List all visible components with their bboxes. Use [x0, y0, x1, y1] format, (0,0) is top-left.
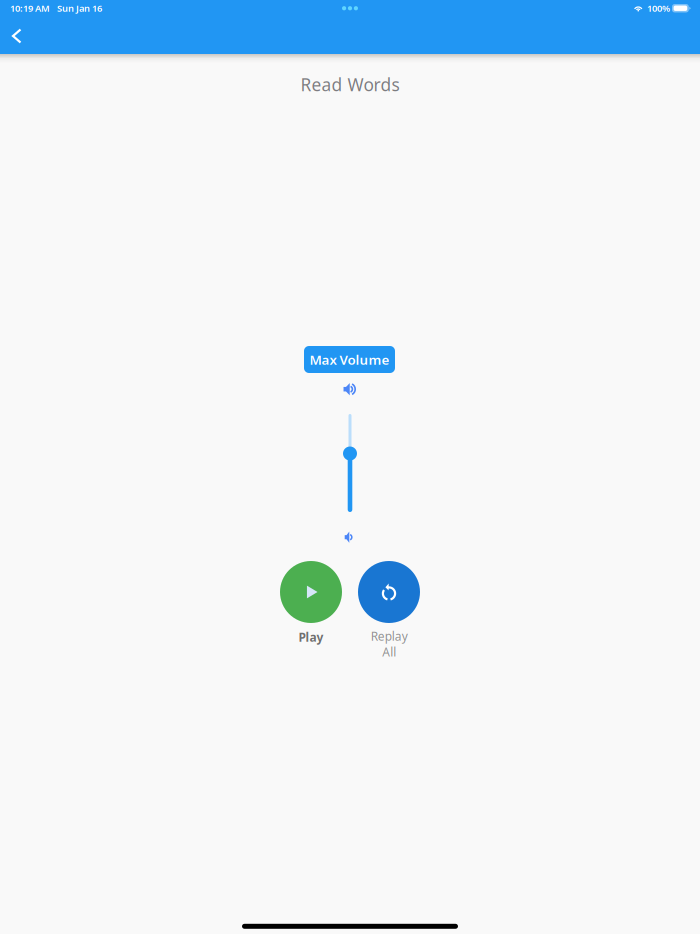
button[interactable]: Volume	[335, 411, 365, 515]
button[interactable]: Replay All	[353, 561, 425, 657]
button[interactable]: Play	[275, 561, 347, 657]
staticText: Read Words	[300, 73, 399, 96]
staticText: 10:19 AM	[10, 2, 50, 14]
staticText: Replay All	[370, 628, 407, 660]
staticText: Play	[298, 629, 323, 645]
button[interactable]: Back	[1, 21, 33, 51]
staticText: 100%	[647, 2, 670, 14]
staticText: Max Volume	[309, 351, 389, 368]
staticText: Sun Jan 16	[57, 2, 102, 14]
